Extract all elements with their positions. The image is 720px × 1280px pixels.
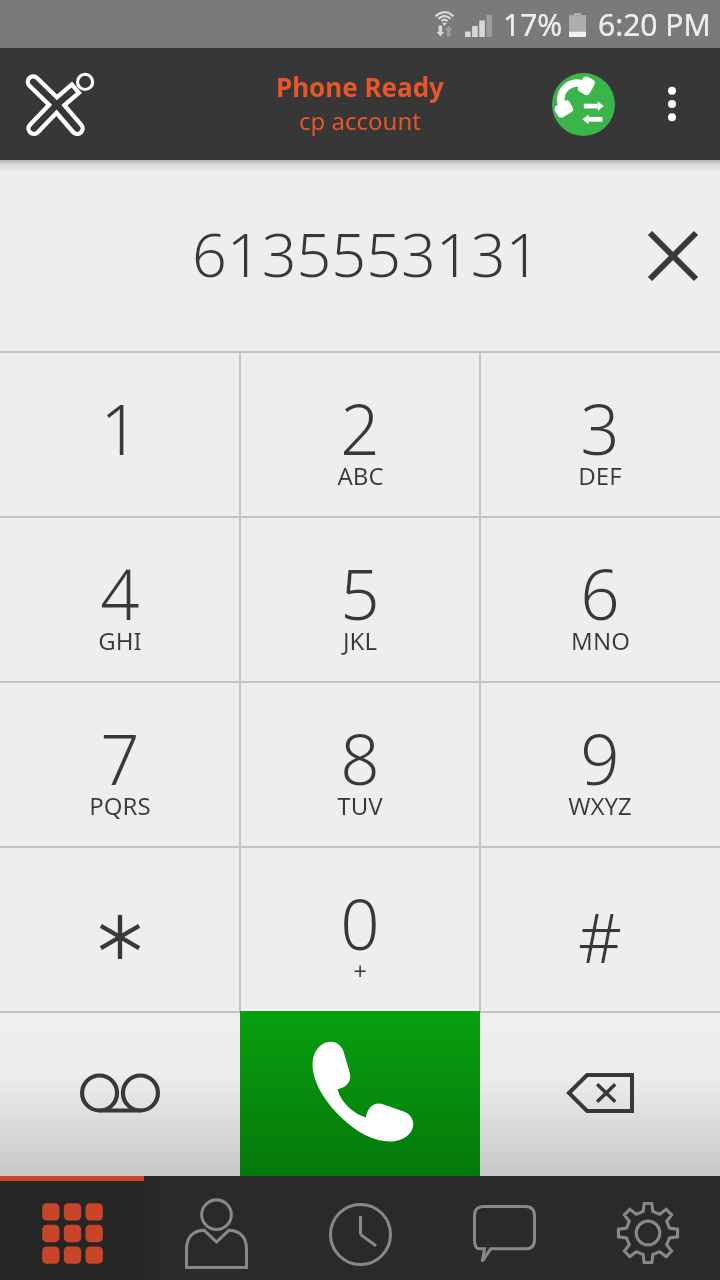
staticText: 6:20 PM	[598, 4, 711, 45]
staticText: #	[578, 890, 622, 983]
button[interactable]: 3	[480, 351, 720, 516]
button[interactable]: 1	[0, 351, 240, 516]
button[interactable]: Transfer call	[537, 58, 629, 150]
button[interactable]: Clear	[634, 218, 710, 294]
staticText: 2	[340, 381, 380, 475]
staticText: 4	[100, 546, 140, 640]
staticText: 9	[580, 711, 620, 805]
staticText: 6135553131	[192, 212, 541, 295]
staticText: 8	[340, 711, 380, 805]
staticText: PQRS	[89, 789, 151, 822]
staticText: 1	[100, 381, 140, 475]
button[interactable]: Contacts	[144, 1176, 288, 1280]
staticText: TUV	[337, 789, 383, 822]
staticText: JKL	[343, 624, 377, 657]
staticText: MNO	[571, 624, 630, 657]
staticText: Phone Ready	[276, 69, 444, 104]
button[interactable]: Backspace	[480, 1011, 720, 1176]
button[interactable]: Recents	[288, 1176, 432, 1280]
button[interactable]: 8	[240, 681, 480, 846]
button[interactable]: 0	[240, 846, 480, 1011]
staticText: ABC	[337, 459, 384, 492]
button[interactable]: Voicemail	[0, 1011, 240, 1176]
staticText: 3	[580, 381, 620, 475]
button[interactable]: 9	[480, 681, 720, 846]
button[interactable]: #	[480, 846, 720, 1011]
button[interactable]: Messages	[432, 1176, 576, 1280]
staticText: GHI	[98, 624, 142, 657]
staticText: DEF	[578, 459, 622, 492]
button[interactable]: Menu logo	[0, 48, 112, 160]
button[interactable]: Settings	[576, 1176, 720, 1280]
staticText: +	[353, 954, 367, 987]
staticText: 0	[340, 876, 380, 970]
button[interactable]: 4	[0, 516, 240, 681]
staticText: WXYZ	[568, 789, 632, 822]
staticText: 6	[580, 546, 620, 640]
button[interactable]: 5	[240, 516, 480, 681]
staticText: cp account	[299, 104, 421, 137]
button[interactable]: 6	[480, 516, 720, 681]
staticText: 7	[100, 711, 140, 805]
staticText: 17%	[503, 4, 563, 45]
button[interactable]: 7	[0, 681, 240, 846]
button[interactable]	[0, 846, 240, 1011]
staticText: 5	[340, 546, 380, 640]
button[interactable]: Dialpad	[0, 1176, 144, 1280]
button[interactable]: More options	[624, 56, 720, 152]
button[interactable]: 2	[240, 351, 480, 516]
button[interactable]: Call	[240, 1011, 480, 1176]
